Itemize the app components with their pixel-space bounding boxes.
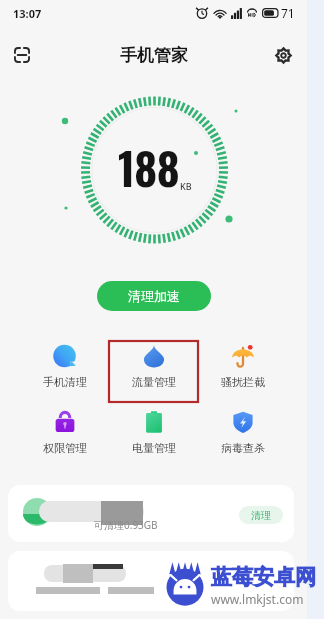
button[interactable]: Settings — [265, 37, 301, 73]
staticText: 13:07 — [13, 6, 42, 21]
staticText: 权限管理 — [43, 441, 87, 455]
staticText: 71 — [281, 5, 295, 21]
button[interactable] — [8, 551, 294, 611]
button[interactable]: 清理加速 — [97, 281, 211, 311]
button[interactable]: 手机清理 — [20, 341, 109, 402]
staticText: KB — [180, 180, 192, 192]
button[interactable]: 权限管理 — [20, 407, 109, 468]
staticText: 手机管家 — [120, 45, 188, 66]
staticText: 流量管理 — [132, 375, 176, 389]
staticText: 清理 — [251, 509, 271, 522]
staticText: 病毒查杀 — [221, 441, 265, 455]
button[interactable]: 流量管理 — [109, 341, 198, 402]
button[interactable]: 骚扰拦截 — [198, 341, 287, 402]
staticText: 清理加速 — [128, 288, 180, 304]
button[interactable]: 电量管理 — [109, 407, 198, 468]
staticText: 蓝莓安卓网 — [211, 564, 316, 590]
staticText: www.lmkjst.com — [211, 591, 304, 607]
staticText: 电量管理 — [132, 441, 176, 455]
staticText: 手机清理 — [43, 375, 87, 389]
staticText: 188 — [118, 135, 179, 200]
button[interactable]: 病毒查杀 — [198, 407, 287, 468]
button[interactable]: 清理 — [239, 506, 283, 524]
staticText: 骚扰拦截 — [221, 375, 265, 389]
button[interactable]: 可清理0.93GB — [8, 485, 294, 542]
button[interactable]: Scan — [4, 37, 40, 73]
staticText: 可清理0.93GB — [94, 518, 158, 532]
